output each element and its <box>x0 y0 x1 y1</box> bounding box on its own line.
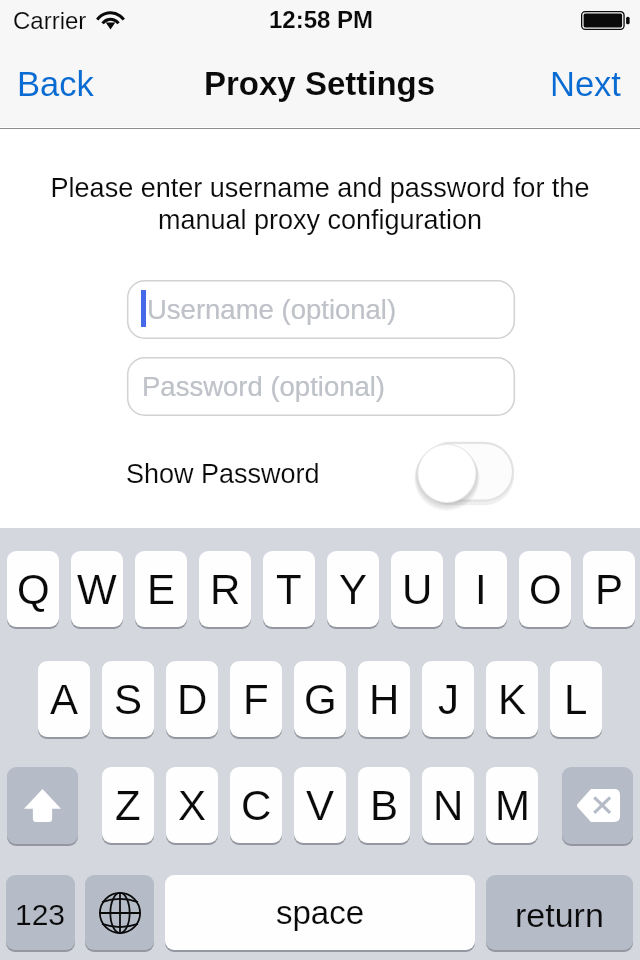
button[interactable]: Y <box>327 551 379 627</box>
button[interactable]: Username (optional) <box>127 280 515 339</box>
staticText: Username (optional) <box>147 294 397 325</box>
button[interactable]: G <box>294 661 346 737</box>
button[interactable]: H <box>358 661 410 737</box>
staticText: J <box>438 676 459 723</box>
staticText: return <box>515 896 604 934</box>
button[interactable]: A <box>38 661 90 737</box>
staticText: H <box>369 676 400 723</box>
button[interactable]: Z <box>102 767 154 843</box>
button[interactable]: U <box>391 551 443 627</box>
button[interactable]: J <box>422 661 474 737</box>
staticText: U <box>402 566 433 613</box>
staticText: Q <box>17 566 50 613</box>
staticText: L <box>564 676 588 723</box>
button[interactable]: X <box>166 767 218 843</box>
button[interactable]: space <box>165 875 475 950</box>
button[interactable]: T <box>263 551 315 627</box>
staticText: D <box>177 676 208 723</box>
button[interactable]: O <box>519 551 571 627</box>
staticText: P <box>595 566 624 613</box>
button[interactable]: B <box>358 767 410 843</box>
button[interactable]: W <box>71 551 123 627</box>
staticText: Back <box>17 65 94 104</box>
staticText: N <box>433 782 464 829</box>
staticText: S <box>114 676 143 723</box>
button[interactable]: I <box>455 551 507 627</box>
button[interactable]: K <box>486 661 538 737</box>
staticText: R <box>210 566 241 613</box>
staticText: 123 <box>15 898 66 932</box>
staticText: I <box>475 566 487 613</box>
button[interactable]: Backspace <box>562 767 633 844</box>
button[interactable]: D <box>166 661 218 737</box>
button[interactable]: C <box>230 767 282 843</box>
button[interactable]: Password (optional) <box>127 357 515 416</box>
staticText: C <box>241 782 272 829</box>
staticText: Carrier <box>13 7 87 34</box>
staticText: Z <box>115 782 141 829</box>
staticText: F <box>243 676 269 723</box>
button[interactable]: P <box>583 551 635 627</box>
staticText: M <box>495 782 530 829</box>
button[interactable]: 123 <box>6 875 75 950</box>
staticText: Password (optional) <box>142 371 386 402</box>
staticText: Next <box>550 65 621 104</box>
button[interactable]: M <box>486 767 538 843</box>
button[interactable]: Switch keyboard <box>85 875 154 950</box>
staticText: B <box>370 782 399 829</box>
button[interactable]: V <box>294 767 346 843</box>
staticText: Proxy Settings <box>204 65 436 102</box>
staticText: Y <box>339 566 368 613</box>
staticText: W <box>77 566 117 613</box>
staticText: E <box>147 566 176 613</box>
button[interactable]: L <box>550 661 602 737</box>
staticText: space <box>276 894 365 931</box>
button[interactable]: Next <box>528 51 640 118</box>
staticText: V <box>306 782 335 829</box>
button[interactable]: Q <box>7 551 59 627</box>
button[interactable]: E <box>135 551 187 627</box>
button[interactable]: return <box>486 875 633 950</box>
button[interactable]: R <box>199 551 251 627</box>
staticText: X <box>178 782 207 829</box>
staticText: A <box>50 676 79 723</box>
button[interactable]: Shift <box>7 767 78 844</box>
button[interactable]: Show Password <box>126 452 320 496</box>
button[interactable]: Back <box>0 51 116 118</box>
button[interactable]: F <box>230 661 282 737</box>
staticText: O <box>529 566 562 613</box>
staticText: K <box>498 676 527 723</box>
staticText: T <box>276 566 302 613</box>
staticText: Please enter username and password for t… <box>0 173 640 235</box>
staticText: G <box>304 676 337 723</box>
button[interactable]: S <box>102 661 154 737</box>
staticText: Show Password <box>126 459 320 489</box>
staticText: 12:58 PM <box>269 6 374 33</box>
button[interactable]: Show Password toggle <box>418 435 518 501</box>
button[interactable]: N <box>422 767 474 843</box>
